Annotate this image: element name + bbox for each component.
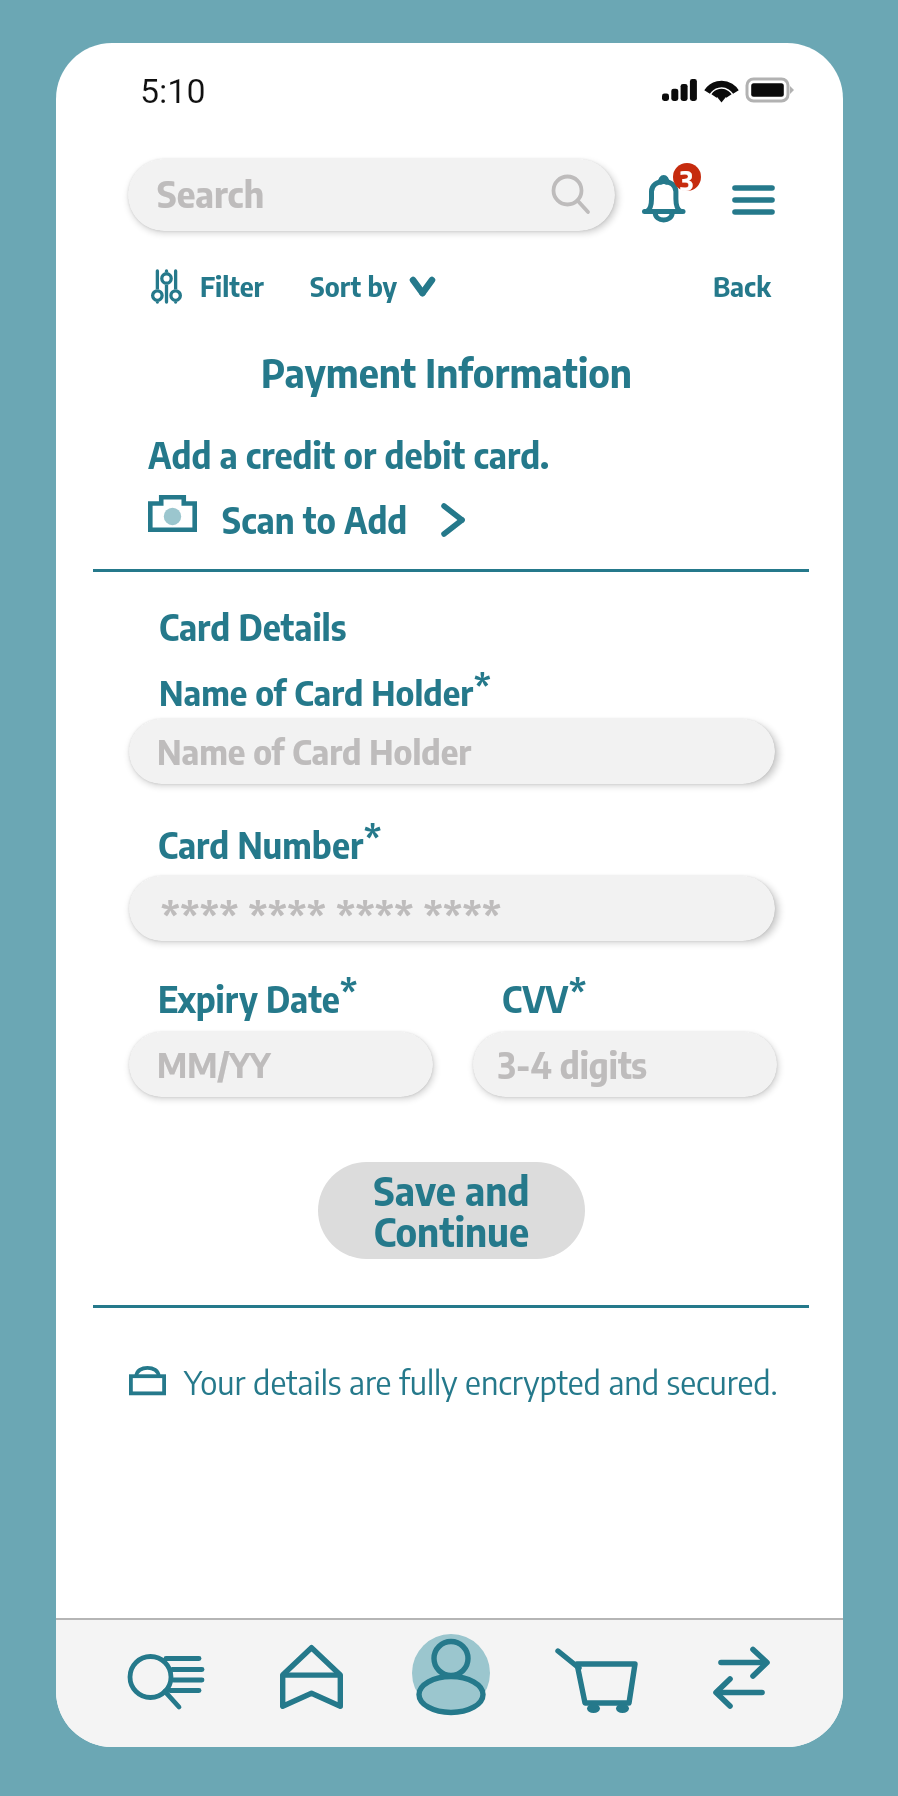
staticText: Add a credit or debit card. xyxy=(148,433,550,477)
staticText: Name of Card Holder xyxy=(157,730,472,773)
button[interactable]: **** **** **** **** xyxy=(129,876,775,941)
staticText: 3 xyxy=(680,164,694,196)
staticText: CVV xyxy=(502,977,569,1021)
staticText: MM/YY xyxy=(157,1043,271,1086)
button[interactable]: Home xyxy=(264,1620,359,1747)
button[interactable]: Sort by xyxy=(310,258,435,314)
button[interactable]: Cart xyxy=(539,1620,660,1747)
button[interactable]: Filter xyxy=(151,258,268,314)
button[interactable]: Name of Card Holder xyxy=(129,719,775,784)
staticText: Save and Continue xyxy=(373,1166,530,1255)
staticText: 3-4 digits xyxy=(498,1043,647,1087)
staticText: Expiry Date xyxy=(158,977,340,1021)
staticText: **** **** **** **** xyxy=(161,891,502,938)
staticText: Name of Card Holder xyxy=(159,671,474,714)
button[interactable]: Scan to Add xyxy=(148,491,465,549)
button[interactable]: Save and Continue xyxy=(318,1162,585,1259)
button[interactable]: Menu xyxy=(716,163,784,217)
button[interactable]: Back xyxy=(713,258,771,314)
staticText: * xyxy=(340,970,358,1014)
staticText: Your details are fully encrypted and sec… xyxy=(184,1361,778,1402)
button[interactable]: Notifications xyxy=(639,165,709,227)
staticText: 5:10 xyxy=(140,71,206,111)
staticText: Search xyxy=(157,171,265,216)
button[interactable]: Search xyxy=(113,1620,218,1747)
button[interactable]: MM/YY xyxy=(129,1032,433,1097)
staticText: * xyxy=(364,816,382,860)
button[interactable]: 3-4 digits xyxy=(473,1032,777,1097)
staticText: Sort by xyxy=(310,269,398,303)
button[interactable]: Profile xyxy=(406,1633,496,1713)
button[interactable]: Transfer xyxy=(698,1620,785,1747)
staticText: Filter xyxy=(200,269,264,303)
staticText: Card Number xyxy=(158,823,364,867)
button[interactable]: Search xyxy=(128,159,615,231)
staticText: Scan to Add xyxy=(222,498,408,542)
staticText: Card Details xyxy=(159,605,347,649)
staticText: * xyxy=(569,970,587,1014)
staticText: Payment Information xyxy=(56,348,840,397)
staticText: Back xyxy=(713,269,771,303)
staticText: * xyxy=(474,664,491,707)
